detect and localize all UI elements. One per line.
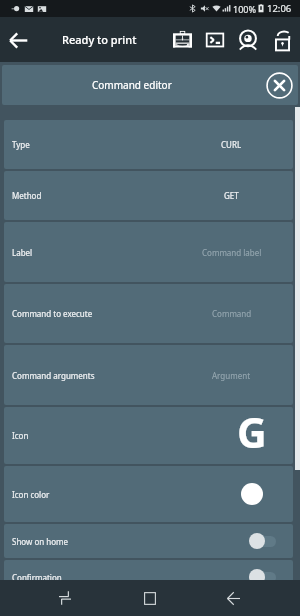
staticText: Argument	[212, 370, 251, 381]
staticText: GET	[224, 190, 239, 201]
button[interactable]: Back	[217, 582, 249, 614]
button[interactable]: Confirmation	[4, 560, 293, 580]
button[interactable]: Back	[4, 26, 32, 54]
button[interactable]: 3D printer	[167, 25, 197, 55]
staticText: Confirmation	[12, 572, 62, 580]
staticText: Command	[212, 308, 252, 319]
button[interactable]: Icon	[4, 407, 293, 464]
staticText: Ready to print	[62, 32, 137, 47]
staticText: Command to execute	[12, 308, 93, 319]
button[interactable]: Command arguments	[4, 345, 293, 405]
staticText: Type	[12, 139, 30, 150]
staticText: Show on home	[12, 536, 69, 547]
staticText: 12:06	[267, 2, 292, 15]
button[interactable]: Command to execute	[4, 284, 293, 343]
staticText: 100%	[233, 3, 256, 15]
button[interactable]: Recents	[49, 582, 81, 614]
staticText: G	[237, 407, 267, 460]
staticText: Icon color	[12, 489, 50, 500]
staticText: Command arguments	[12, 370, 95, 381]
button[interactable]: Label	[4, 222, 293, 282]
button[interactable]: Webcam	[233, 25, 263, 55]
button[interactable]: Home	[134, 582, 166, 614]
staticText: Method	[12, 190, 42, 201]
staticText: Command label	[202, 247, 262, 258]
staticText: Icon	[12, 430, 29, 441]
staticText: Command editor	[92, 78, 172, 92]
button[interactable]: Icon color	[4, 466, 293, 522]
staticText: Label	[12, 247, 33, 258]
button[interactable]: Close	[264, 70, 294, 100]
button[interactable]: Type	[4, 120, 293, 169]
button[interactable]: Terminal	[200, 25, 230, 55]
button[interactable]: Show on home	[4, 524, 293, 558]
staticText: CURL	[221, 139, 242, 150]
button[interactable]: Unlock	[267, 25, 297, 55]
button[interactable]: Method	[4, 171, 293, 220]
